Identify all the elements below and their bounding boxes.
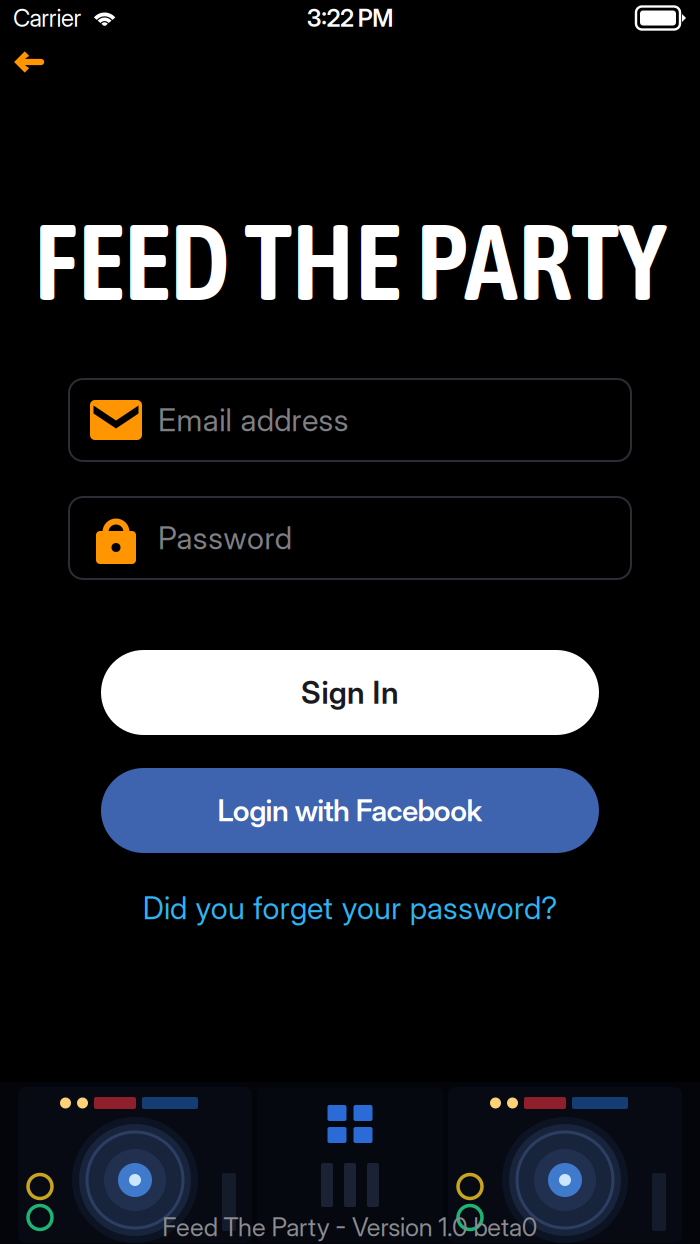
button[interactable]: Back [0, 36, 58, 88]
button[interactable]: Login with Facebook [101, 768, 599, 853]
staticText: FEED THE PARTY [33, 199, 666, 323]
staticText: Password [158, 519, 292, 556]
button[interactable]: Email address [69, 379, 631, 461]
button[interactable]: Sign In [101, 650, 599, 735]
staticText: Sign In [301, 674, 399, 711]
staticText: Did you forget your password? [143, 889, 557, 926]
button[interactable]: Password [69, 497, 631, 579]
staticText: 3:22 PM [307, 3, 393, 32]
staticText: Email address [158, 401, 349, 438]
button[interactable]: Did you forget your password? [30, 886, 670, 930]
staticText: Feed The Party - Version 1.0 beta0 [162, 1212, 538, 1242]
staticText: Login with Facebook [217, 793, 483, 828]
staticText: Carrier [13, 3, 82, 32]
